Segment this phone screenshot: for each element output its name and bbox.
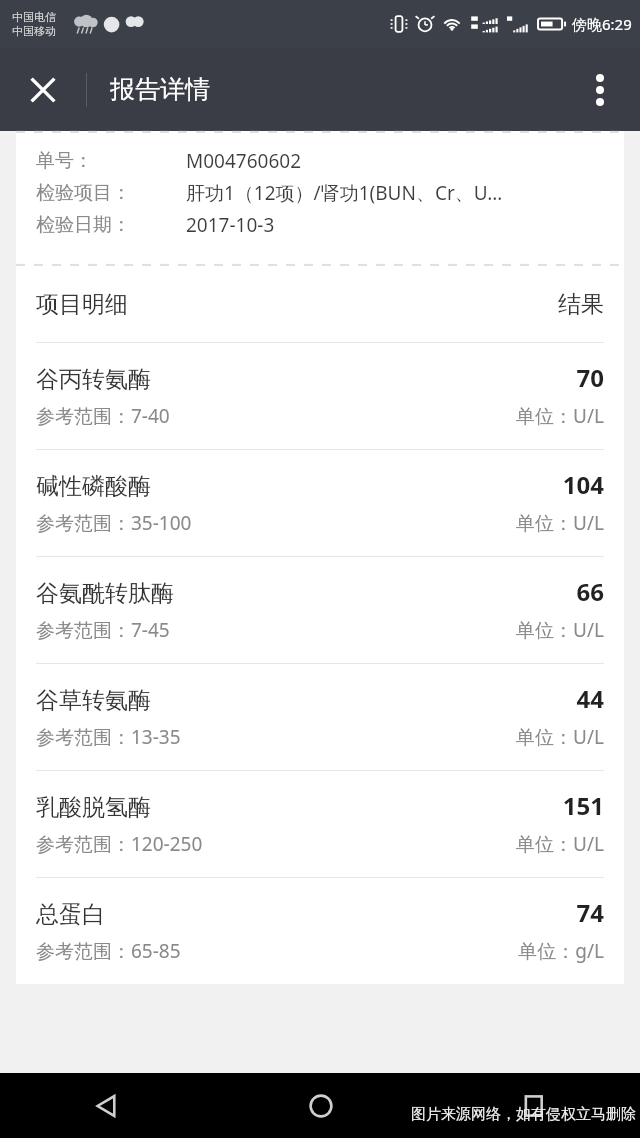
staticText: 151: [562, 789, 604, 822]
staticText: 结果: [558, 290, 604, 319]
staticText: 谷草转氨酶: [36, 686, 576, 715]
staticText: 单位：U/L: [516, 617, 604, 643]
staticText: 乳酸脱氢酶: [36, 793, 562, 822]
staticText: 参考范围：65-85: [36, 938, 518, 964]
staticText: 参考范围：7-40: [36, 403, 516, 429]
staticText: 检验项目：: [36, 181, 186, 205]
staticText: 报告详情: [110, 74, 210, 105]
staticText: 碱性磷酸酶: [36, 472, 562, 501]
staticText: 谷氨酰转肽酶: [36, 579, 576, 608]
staticText: 检验日期：: [36, 213, 186, 237]
staticText: 单位：U/L: [516, 831, 604, 857]
staticText: 图片来源网络，如有侵权立马删除: [411, 1105, 636, 1124]
staticText: 傍晚6:29: [572, 14, 632, 34]
staticText: 中国移动: [12, 24, 56, 38]
staticText: 2017-10-3: [186, 212, 275, 238]
button[interactable]: More options: [560, 48, 640, 131]
staticText: 总蛋白: [36, 900, 576, 929]
button[interactable]: 乳酸脱氢酶: [16, 771, 624, 877]
staticText: 104: [562, 468, 604, 501]
staticText: 74: [576, 896, 604, 929]
staticText: 项目明细: [36, 290, 128, 319]
button[interactable]: 谷丙转氨酶: [16, 343, 624, 449]
staticText: 66: [576, 575, 604, 608]
staticText: 参考范围：13-35: [36, 724, 516, 750]
button[interactable]: Recent apps: [427, 1073, 640, 1138]
button[interactable]: Home: [214, 1073, 427, 1138]
button[interactable]: 总蛋白: [16, 878, 624, 984]
staticText: 单号：: [36, 149, 186, 173]
button[interactable]: Back: [0, 1073, 214, 1138]
staticText: 中国电信: [12, 10, 56, 24]
staticText: 单位：U/L: [516, 510, 604, 536]
staticText: 参考范围：35-100: [36, 510, 516, 536]
staticText: 参考范围：7-45: [36, 617, 516, 643]
button[interactable]: Close: [0, 48, 86, 131]
staticText: 单位：U/L: [516, 403, 604, 429]
staticText: 谷丙转氨酶: [36, 365, 576, 394]
staticText: 44: [576, 682, 604, 715]
button[interactable]: 谷草转氨酶: [16, 664, 624, 770]
staticText: 单位：U/L: [516, 724, 604, 750]
staticText: 70: [576, 361, 604, 394]
staticText: 肝功1（12项）/肾功1(BUN、Cr、U…: [186, 180, 503, 206]
staticText: M004760602: [186, 148, 302, 174]
staticText: 单位：g/L: [518, 938, 604, 964]
button[interactable]: 碱性磷酸酶: [16, 450, 624, 556]
button[interactable]: 谷氨酰转肽酶: [16, 557, 624, 663]
staticText: 参考范围：120-250: [36, 831, 516, 857]
